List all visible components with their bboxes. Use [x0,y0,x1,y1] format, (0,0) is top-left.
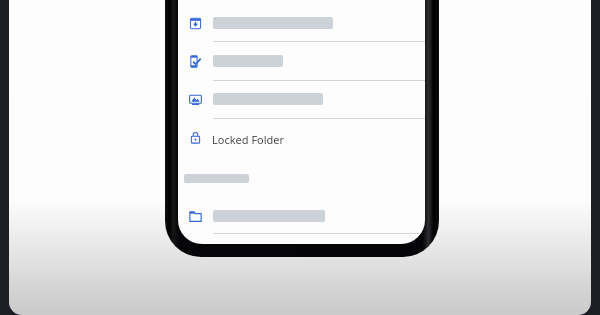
button[interactable]: Locked Folder [178,125,425,149]
staticText: Locked Folder [212,132,285,147]
button[interactable]: Archive [178,11,425,35]
button[interactable]: On this device [178,49,425,73]
button[interactable]: Photo frame [178,87,425,111]
button[interactable]: Folder [178,204,425,228]
